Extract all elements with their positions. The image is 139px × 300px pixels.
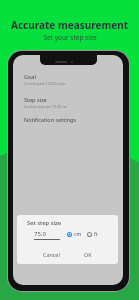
button[interactable]: Notification settings bbox=[13, 115, 123, 125]
staticText: OK bbox=[84, 251, 92, 258]
staticText: 75.0 bbox=[34, 230, 46, 238]
staticText: Accurate measurement bbox=[11, 18, 128, 32]
staticText: Step size bbox=[24, 96, 47, 103]
button[interactable]: centimeters bbox=[66, 230, 83, 239]
button[interactable]: OK bbox=[83, 250, 93, 259]
button[interactable]: Cancel bbox=[42, 250, 61, 259]
staticText: cm bbox=[74, 231, 82, 238]
other: centimeters bbox=[67, 232, 72, 237]
staticText: Set your step size bbox=[43, 33, 97, 42]
staticText: Notification settings bbox=[24, 116, 77, 123]
button[interactable]: Step size bbox=[13, 96, 123, 109]
staticText: Set step size bbox=[27, 219, 62, 227]
staticText: Current step size: 75.00 cm bbox=[24, 104, 67, 109]
button[interactable]: Goal bbox=[13, 73, 123, 86]
staticText: ft bbox=[94, 231, 98, 238]
staticText: Cancel bbox=[43, 251, 60, 258]
staticText: Current goal: 10.000 steps bbox=[24, 81, 66, 86]
staticText: Goal bbox=[24, 73, 36, 80]
button[interactable]: feet bbox=[86, 230, 99, 239]
other: feet bbox=[87, 232, 92, 237]
